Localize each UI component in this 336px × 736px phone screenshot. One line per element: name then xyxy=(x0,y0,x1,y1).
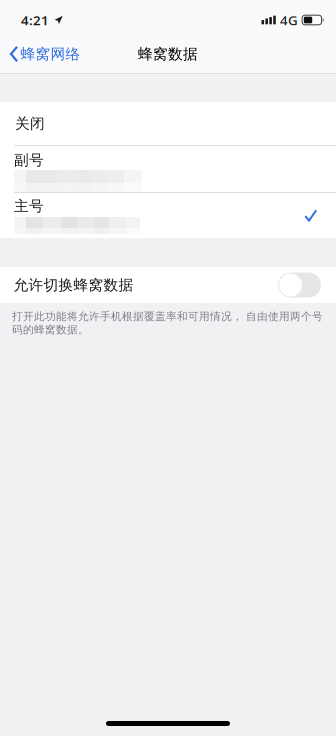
staticText: 副号 xyxy=(14,151,44,169)
button[interactable]: 副号 xyxy=(0,146,336,192)
button[interactable]: 主号 xyxy=(0,193,336,238)
staticText: 4G xyxy=(280,11,298,29)
staticText: 关闭 xyxy=(15,114,45,132)
staticText: 蜂窝网络 xyxy=(20,45,80,63)
button[interactable]: 蜂窝网络 xyxy=(0,40,90,68)
staticText: 蜂窝数据 xyxy=(138,45,198,63)
button[interactable]: 关闭 xyxy=(0,102,336,145)
staticText: 主号 xyxy=(14,197,44,215)
staticText: 4:21 xyxy=(21,11,49,29)
staticText: 允许切换蜂窝数据 xyxy=(13,276,133,294)
staticText: 打开此功能将允许手机根据覆盖率和可用情况， 自由使用两个号码的蜂窝数据。 xyxy=(12,310,323,336)
button[interactable]: 允许切换蜂窝数据 xyxy=(278,272,321,297)
